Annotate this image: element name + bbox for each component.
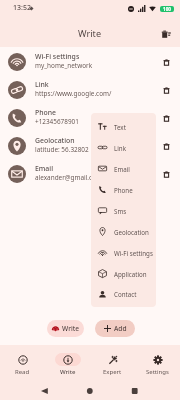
staticText: Write [60, 368, 76, 376]
button[interactable]: Delete [156, 164, 176, 184]
button[interactable]: Add [95, 320, 135, 337]
button[interactable]: Contact [91, 284, 156, 304]
staticText: Add [114, 324, 127, 333]
staticText: Expert [103, 368, 122, 376]
staticText: Write [62, 324, 80, 333]
staticText: Email [114, 165, 130, 173]
button[interactable]: Settings [135, 345, 180, 379]
staticText: my_home_network [35, 61, 93, 70]
button[interactable]: Write [47, 320, 84, 337]
staticText: Geolocation [35, 136, 75, 145]
button[interactable]: Email [91, 158, 156, 179]
staticText: Email [35, 164, 54, 173]
staticText: 13:52 [13, 3, 31, 13]
staticText: Contact [114, 290, 137, 298]
button[interactable]: Phone [91, 179, 156, 200]
staticText: Phone [35, 108, 57, 117]
button[interactable]: Delete [156, 136, 176, 156]
button[interactable]: Geolocation [0, 132, 180, 160]
button[interactable]: Link [0, 76, 180, 104]
staticText: Link [114, 144, 126, 152]
staticText: Link [35, 80, 49, 89]
button[interactable]: Geolocation [91, 221, 156, 242]
staticText: Settings [146, 368, 169, 376]
button[interactable]: Link [91, 137, 156, 158]
button[interactable]: Sms [91, 200, 156, 221]
button[interactable]: Email [0, 160, 180, 188]
button[interactable]: Wi-Fi settings [91, 242, 156, 263]
staticText: latitude: 56.32802 [35, 145, 89, 154]
button[interactable]: Home [82, 382, 98, 398]
staticText: https://www.google.com/ [35, 89, 112, 98]
button[interactable]: Expert [90, 345, 135, 379]
button[interactable]: Wi-Fi settings [0, 48, 180, 76]
staticText: +12345678901 [35, 117, 79, 126]
staticText: Phone [114, 186, 133, 194]
button[interactable]: Phone [0, 104, 180, 132]
staticText: Write [78, 27, 102, 40]
button[interactable]: Back [36, 382, 52, 398]
staticText: Wi-Fi settings [35, 52, 80, 61]
button[interactable]: Delete [156, 52, 176, 72]
staticText: Read [15, 368, 30, 376]
button[interactable]: Delete all [156, 24, 176, 44]
button[interactable]: Text [91, 116, 156, 137]
button[interactable]: Delete [156, 108, 176, 128]
staticText: Sms [114, 207, 127, 215]
staticText: alexander@gmail.com [35, 173, 102, 182]
button[interactable]: Application [91, 263, 156, 284]
staticText: Wi-Fi settings [114, 249, 153, 257]
button[interactable]: Read [0, 345, 45, 379]
staticText: Geolocation [114, 228, 149, 236]
button[interactable]: Recent apps [127, 382, 143, 398]
staticText: Text [114, 123, 126, 131]
staticText: Application [114, 270, 147, 278]
button[interactable]: Write [45, 345, 90, 379]
button[interactable]: Delete [156, 80, 176, 100]
staticText: 100 [163, 6, 171, 12]
